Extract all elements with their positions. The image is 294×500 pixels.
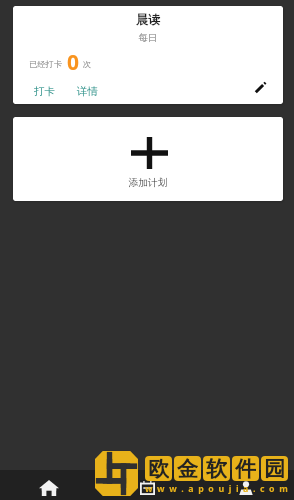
staticText: 添加计划 [13, 177, 283, 189]
staticText: 软 [206, 456, 227, 481]
staticText: 金 [177, 456, 198, 481]
staticText: 件 [235, 456, 256, 481]
staticText: 欧 [148, 456, 169, 481]
staticText: 园 [264, 456, 285, 481]
staticText: 每日 [13, 32, 283, 44]
staticText: 晨读 [13, 12, 283, 27]
staticText: 打卡 [34, 85, 55, 98]
staticText: 次 [83, 59, 92, 69]
button[interactable]: 添加计划 [13, 117, 283, 201]
button[interactable]: Profile [196, 470, 294, 500]
button[interactable]: 打卡 [27, 82, 62, 101]
staticText: w w w . a p o u j i a . c o m [145, 483, 288, 495]
staticText: 0 [67, 48, 80, 77]
staticText: 详情 [77, 85, 98, 98]
button[interactable]: Home [0, 470, 98, 500]
button[interactable]: Plans [98, 470, 196, 500]
staticText: 已经打卡 [29, 59, 63, 69]
button[interactable]: 详情 [70, 82, 105, 101]
button[interactable]: Edit [248, 76, 272, 100]
